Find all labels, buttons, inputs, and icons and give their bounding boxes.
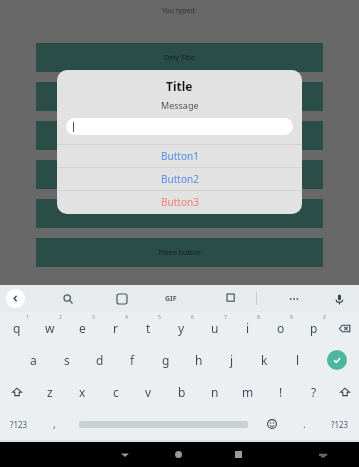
button[interactable]: More options — [284, 289, 304, 309]
button[interactable]: Backspace — [330, 312, 359, 344]
staticText: ? — [311, 384, 317, 400]
staticText: e — [79, 320, 86, 336]
button[interactable]: e — [66, 312, 99, 344]
button[interactable]: . — [288, 408, 321, 440]
button[interactable]: n — [198, 376, 231, 408]
staticText: 8 — [257, 314, 260, 321]
staticText: a — [30, 352, 37, 368]
staticText: l — [296, 352, 300, 368]
staticText: p — [310, 320, 318, 336]
staticText: m — [242, 384, 254, 400]
staticText: n — [211, 384, 219, 400]
button[interactable]: Back — [6, 289, 25, 308]
staticText: d — [96, 352, 104, 368]
button[interactable]: Recents — [226, 442, 251, 467]
button[interactable]: j — [215, 344, 248, 376]
button[interactable]: Button2 — [57, 168, 302, 190]
button[interactable]: r — [99, 312, 132, 344]
button[interactable]: s — [50, 344, 83, 376]
staticText: g — [162, 352, 170, 368]
button[interactable]: Translate — [222, 289, 242, 309]
staticText: w — [45, 320, 55, 336]
button[interactable]: h — [182, 344, 215, 376]
staticText: Message — [161, 99, 199, 111]
staticText: f — [130, 352, 135, 368]
button[interactable]: d — [83, 344, 116, 376]
staticText: s — [64, 352, 70, 368]
button[interactable]: x — [66, 376, 99, 408]
button[interactable]: m — [231, 376, 264, 408]
staticText: Button1 — [161, 149, 199, 163]
staticText: You typed: — [162, 6, 197, 16]
button[interactable]: ? — [297, 376, 330, 408]
staticText: Three button — [158, 248, 201, 258]
staticText: 4 — [125, 314, 128, 321]
button[interactable] — [36, 199, 323, 228]
button[interactable]: i — [231, 312, 264, 344]
staticText: ! — [279, 384, 283, 400]
button[interactable]: u — [198, 312, 231, 344]
button[interactable]: Button1 — [57, 145, 302, 167]
staticText: ?123 — [10, 419, 28, 430]
button[interactable]: ?123 — [321, 408, 359, 440]
staticText: k — [261, 352, 268, 368]
button[interactable] — [36, 82, 323, 111]
button[interactable] — [36, 160, 323, 189]
button[interactable] — [66, 118, 293, 135]
staticText: u — [211, 320, 219, 336]
button[interactable]: Back — [112, 442, 137, 467]
button[interactable]: Emoji — [255, 408, 288, 440]
button[interactable]: w — [33, 312, 66, 344]
button[interactable]: Only Title — [36, 43, 323, 72]
staticText: ?123 — [331, 419, 349, 430]
staticText: Only Title — [164, 53, 195, 63]
button[interactable]: GIF — [165, 294, 177, 304]
staticText: o — [277, 320, 285, 336]
button[interactable] — [36, 121, 323, 150]
button[interactable]: v — [132, 376, 165, 408]
staticText: 6 — [191, 314, 194, 321]
button[interactable]: b — [165, 376, 198, 408]
button[interactable]: c — [99, 376, 132, 408]
button[interactable]: Keyboard layout — [310, 442, 335, 467]
staticText: 5 — [158, 314, 161, 321]
button[interactable]: q — [0, 312, 33, 344]
button[interactable]: k — [248, 344, 281, 376]
button[interactable]: Shift — [0, 376, 33, 408]
staticText: j — [230, 352, 234, 368]
button[interactable]: z — [33, 376, 66, 408]
staticText: 3 — [92, 314, 95, 321]
staticText: 9 — [290, 314, 293, 321]
button[interactable]: f — [116, 344, 149, 376]
button[interactable]: Shift — [330, 376, 359, 408]
button[interactable]: Enter — [314, 344, 359, 376]
staticText: , — [53, 417, 56, 431]
button[interactable]: g — [149, 344, 182, 376]
button[interactable]: , — [38, 408, 71, 440]
staticText: Button3 — [161, 195, 199, 209]
staticText: b — [178, 384, 186, 400]
button[interactable]: p — [297, 312, 330, 344]
button[interactable]: l — [281, 344, 314, 376]
button[interactable]: y — [165, 312, 198, 344]
button[interactable]: ! — [264, 376, 297, 408]
button[interactable]: o — [264, 312, 297, 344]
staticText: . — [303, 417, 306, 431]
staticText: y — [178, 320, 185, 336]
staticText: Button2 — [161, 172, 199, 186]
staticText: Title — [166, 78, 193, 94]
button[interactable]: a — [17, 344, 50, 376]
staticText: r — [113, 320, 118, 336]
button[interactable]: Space — [71, 408, 255, 440]
button[interactable]: Voice input — [329, 289, 349, 309]
button[interactable]: t — [132, 312, 165, 344]
staticText: i — [246, 320, 250, 336]
button[interactable]: ?123 — [0, 408, 38, 440]
button[interactable]: Search — [58, 289, 78, 309]
button[interactable]: Button3 — [57, 191, 302, 213]
staticText: 2 — [59, 314, 62, 321]
button[interactable]: Stickers — [112, 289, 132, 309]
staticText: GIF — [165, 294, 177, 304]
button[interactable]: Home — [166, 442, 191, 467]
